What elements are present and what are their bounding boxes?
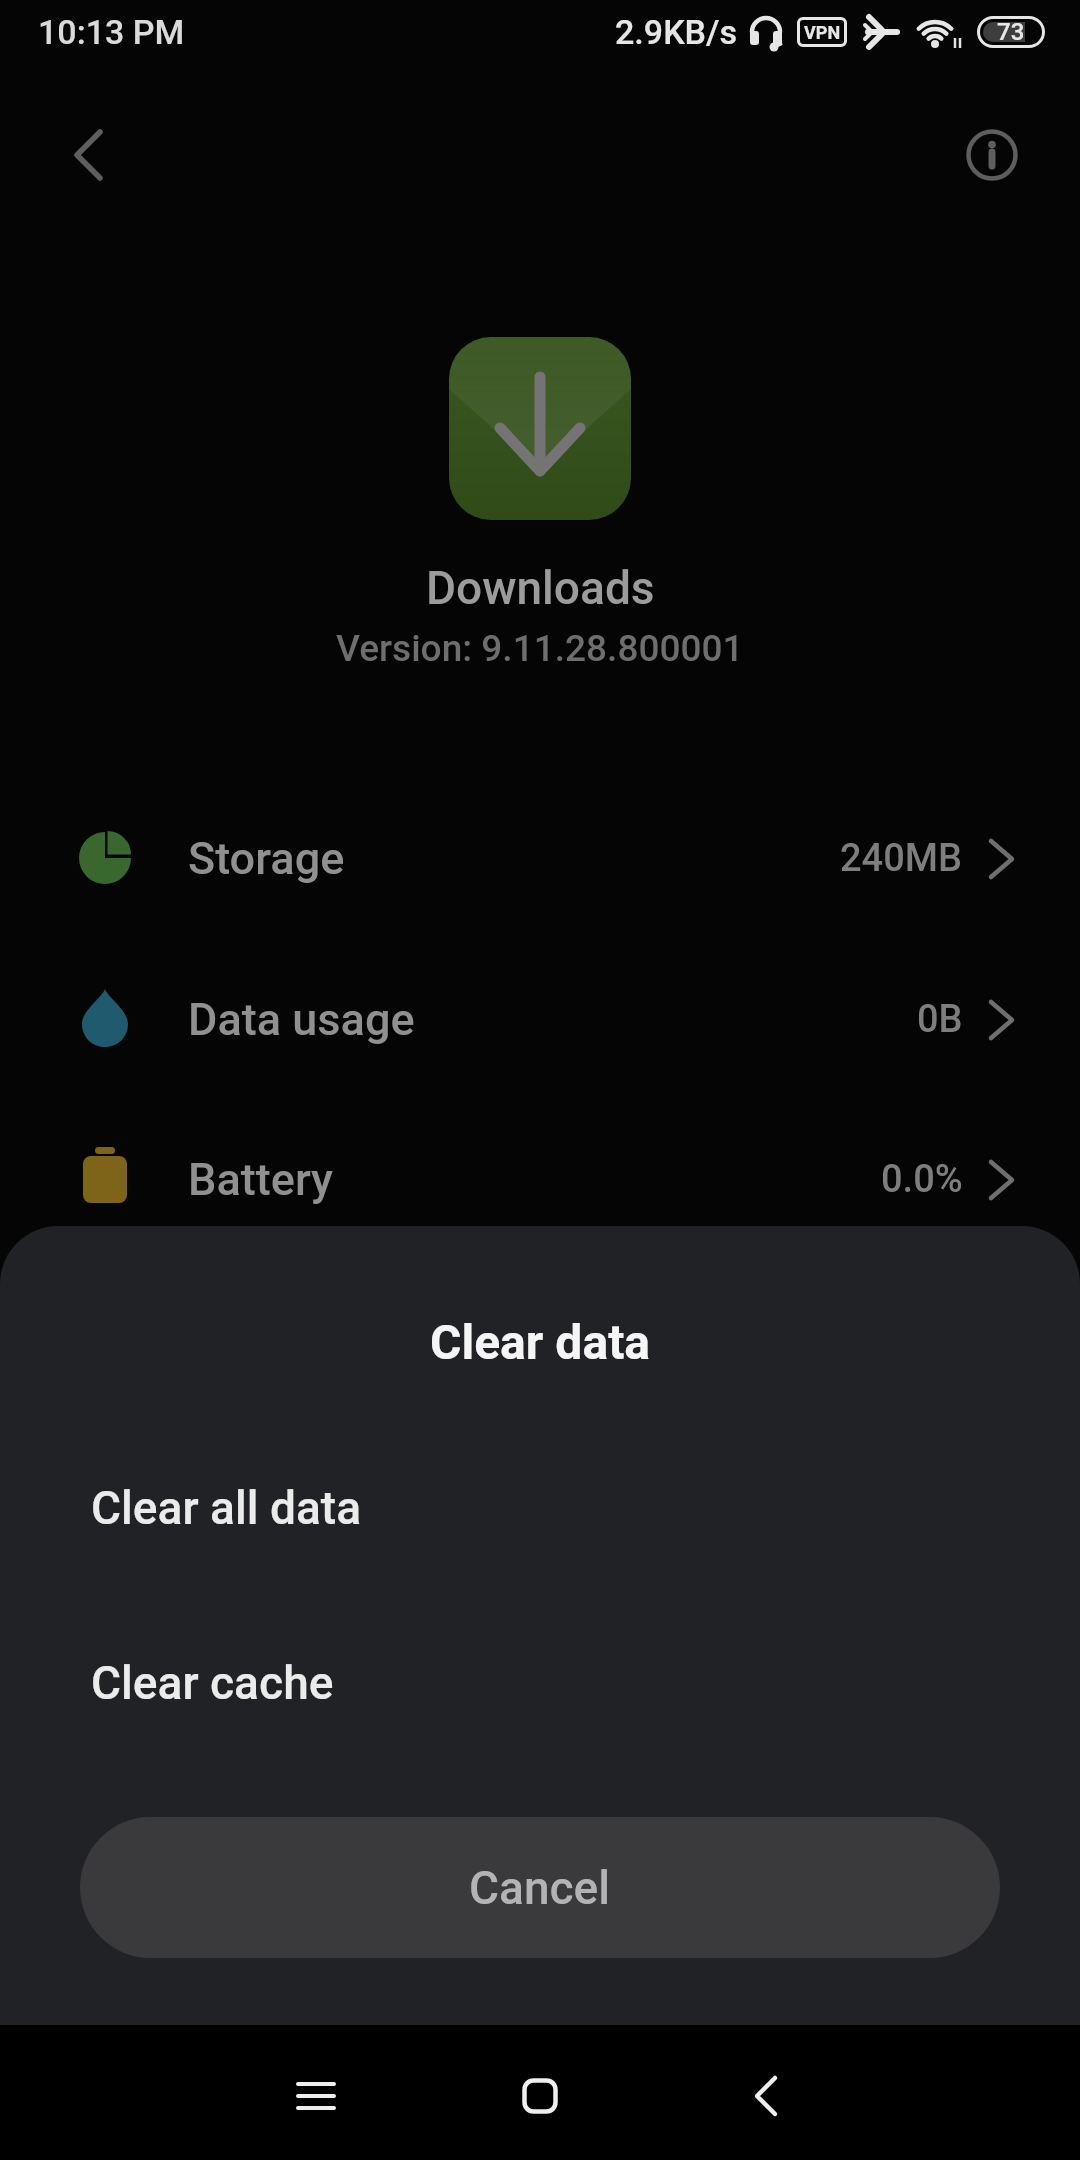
- button[interactable]: Data usage: [0, 959, 1080, 1079]
- staticText: 0B: [917, 997, 963, 1042]
- staticText: 0.0%: [881, 1157, 963, 1202]
- staticText: Version: 9.11.28.800001: [336, 627, 744, 670]
- staticText: Cancel: [469, 1861, 611, 1915]
- staticText: Clear data: [430, 1314, 651, 1370]
- staticText: Battery: [188, 1153, 334, 1206]
- staticText: 73: [997, 18, 1025, 46]
- button[interactable]: Storage: [0, 798, 1080, 918]
- staticText: 2.9KB/s: [615, 12, 738, 52]
- button[interactable]: Clear all data: [0, 1448, 1080, 1568]
- staticText: 10:13 PM: [38, 12, 185, 52]
- staticText: Data usage: [188, 993, 415, 1046]
- button[interactable]: [492, 2048, 588, 2144]
- staticText: Clear cache: [91, 1656, 334, 1710]
- button[interactable]: [718, 2048, 814, 2144]
- staticText: Downloads: [426, 561, 655, 615]
- button[interactable]: Battery: [0, 1119, 1080, 1239]
- button[interactable]: Cancel: [80, 1817, 1000, 1958]
- button[interactable]: [268, 2048, 364, 2144]
- staticText: Storage: [188, 832, 345, 885]
- button[interactable]: [947, 110, 1037, 200]
- staticText: VPN: [804, 22, 841, 43]
- staticText: Clear all data: [91, 1481, 362, 1535]
- button[interactable]: [43, 110, 133, 200]
- staticText: 240MB: [840, 836, 963, 881]
- button[interactable]: Clear cache: [0, 1623, 1080, 1743]
